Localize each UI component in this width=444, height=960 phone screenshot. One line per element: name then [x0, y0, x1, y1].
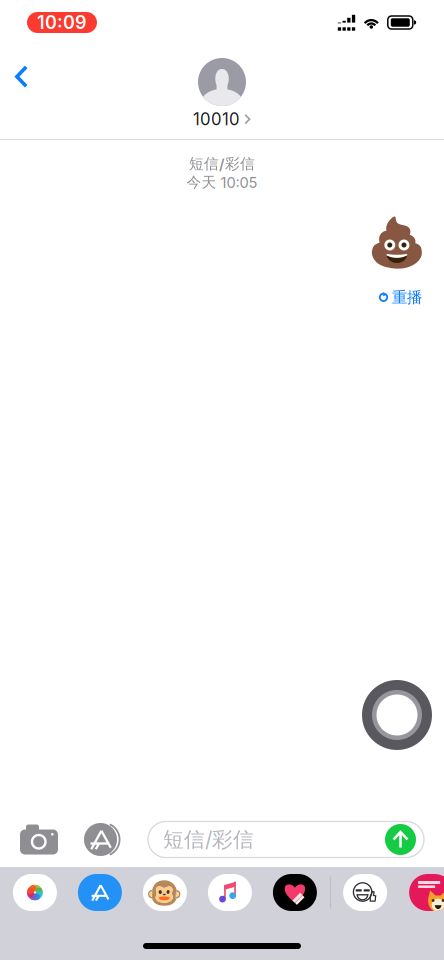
button[interactable]: Sticker pack — [409, 874, 444, 911]
staticText: 💩 — [367, 214, 427, 271]
button[interactable]: Photos — [13, 874, 57, 911]
staticText: 短信/彩信 — [189, 155, 255, 173]
button[interactable]: Stickers — [343, 874, 387, 911]
staticText: 重播 — [392, 288, 422, 307]
button[interactable]: Camera — [20, 824, 58, 854]
staticText: 10010 — [193, 109, 240, 129]
button[interactable]: Memoji — [143, 874, 187, 911]
button[interactable]: Send — [385, 824, 416, 855]
button[interactable]: Back — [0, 45, 50, 110]
staticText: 今天 10:05 — [186, 173, 257, 192]
button[interactable]: Apps — [84, 821, 120, 857]
button[interactable]: App Store — [78, 874, 122, 911]
button[interactable]: 重播 — [378, 286, 422, 309]
staticText: 10:09 — [37, 12, 87, 33]
staticText: 短信/彩信 — [163, 826, 254, 852]
staticText: 🐵 — [146, 875, 183, 910]
button[interactable]: Music — [208, 874, 252, 911]
button[interactable]: Digital Touch — [273, 874, 317, 911]
